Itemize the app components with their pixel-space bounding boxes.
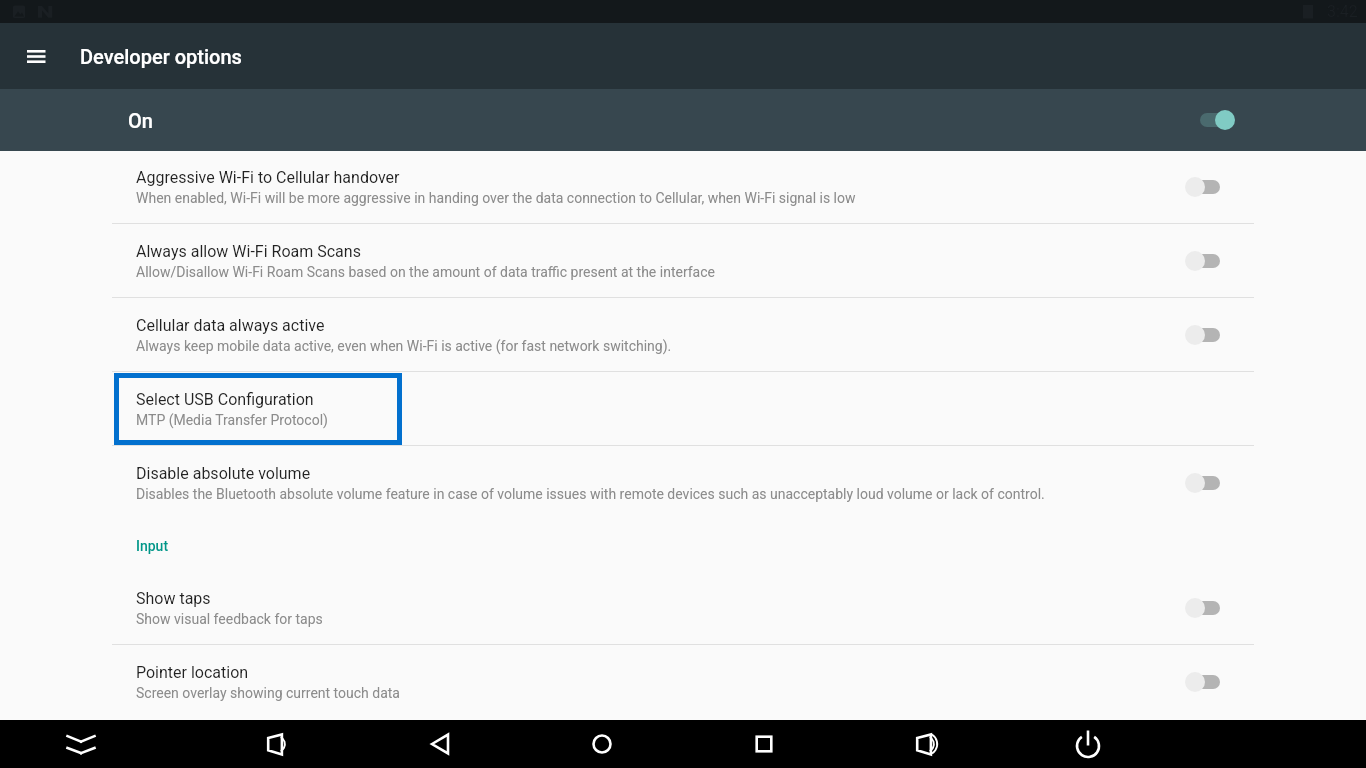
staticText: MTP (Media Transfer Protocol) [136,412,328,428]
staticText: Pointer location [136,663,249,682]
button[interactable]: Show taps [0,571,1366,644]
staticText: Disables the Bluetooth absolute volume f… [136,486,1045,502]
staticText: Select USB Configuration [136,390,314,409]
button[interactable]: Always allow Wi-Fi Roam Scans [0,224,1366,297]
staticText: Show visual feedback for taps [136,611,323,627]
button[interactable]: Disable absolute volume [0,446,1366,519]
button[interactable] [114,373,402,445]
staticText: Always allow Wi-Fi Roam Scans [136,242,361,261]
button[interactable]: Pointer location [0,645,1366,718]
button[interactable]: Recent apps [737,720,791,768]
staticText: Aggressive Wi-Fi to Cellular handover [136,168,400,187]
button[interactable]: Open navigation drawer [14,34,58,78]
staticText: Always keep mobile data active, even whe… [136,338,672,354]
staticText: Allow/Disallow Wi-Fi Roam Scans based on… [136,264,715,280]
staticText: Cellular data always active [136,316,325,335]
button[interactable]: Volume down [250,720,304,768]
button[interactable]: Home [575,720,629,768]
staticText: Input [136,538,169,554]
staticText: On [128,109,153,132]
button[interactable]: Power [1061,720,1115,768]
button[interactable]: Aggressive Wi-Fi to Cellular handover [0,151,1366,223]
button[interactable]: Back [412,720,466,768]
button[interactable]: Cellular data always active [0,298,1366,371]
staticText: Show taps [136,589,211,608]
button[interactable]: Volume up [899,720,953,768]
staticText: Screen overlay showing current touch dat… [136,685,400,701]
staticText: Developer options [80,45,242,68]
staticText: When enabled, Wi-Fi will be more aggress… [136,190,856,206]
button[interactable]: Collapse [54,720,108,768]
button[interactable]: On [0,89,1366,151]
staticText: Disable absolute volume [136,464,311,483]
